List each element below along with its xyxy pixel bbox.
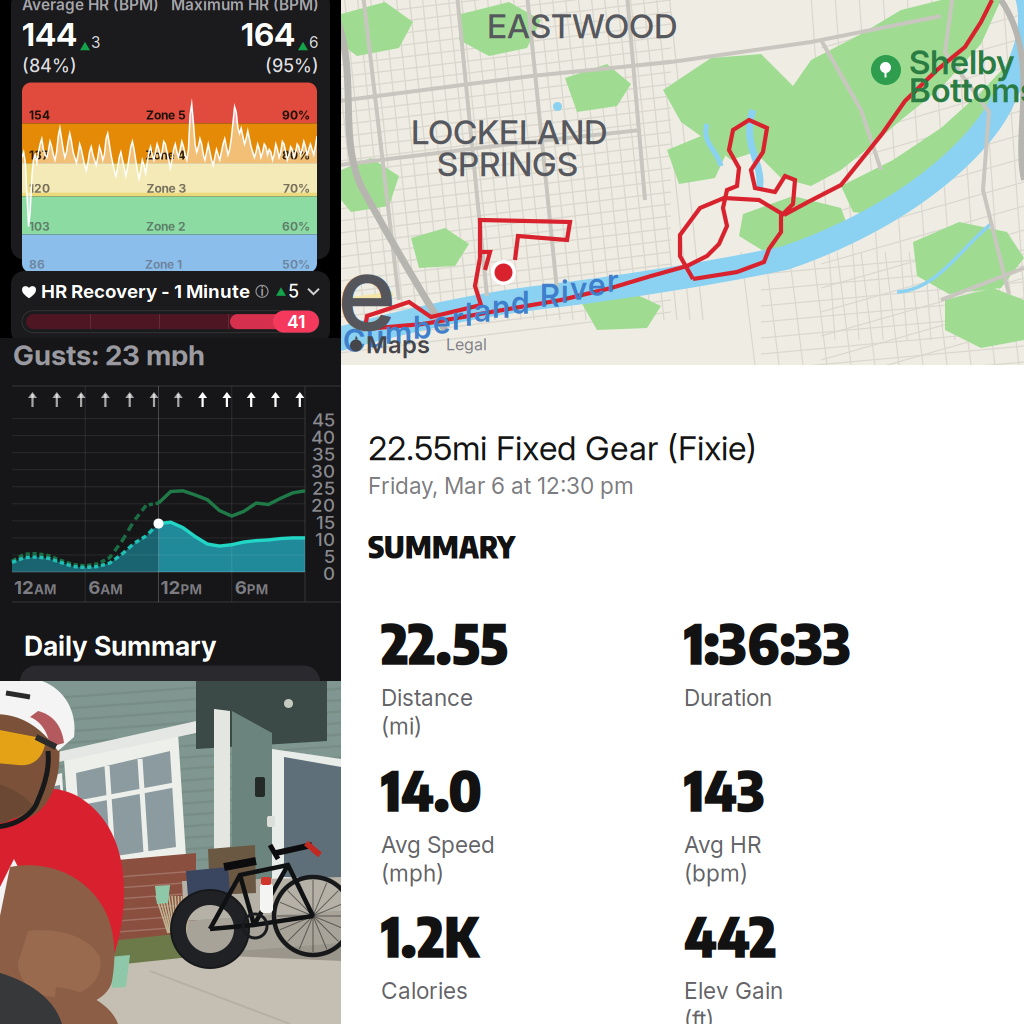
staticText: e bbox=[337, 232, 397, 355]
staticText: 70% bbox=[283, 181, 310, 195]
staticText: 50% bbox=[282, 257, 310, 271]
staticText: SPRINGS bbox=[437, 144, 578, 184]
staticText: 0 bbox=[323, 562, 335, 585]
staticText: 143 bbox=[684, 754, 765, 824]
staticText: e bbox=[433, 304, 451, 341]
staticText: 144 bbox=[22, 15, 77, 54]
staticText: n bbox=[492, 288, 510, 325]
staticText: 137 bbox=[29, 148, 49, 162]
staticText: Average HR (BPM) bbox=[22, 0, 159, 14]
staticText: 120 bbox=[29, 181, 50, 195]
staticText: 10 bbox=[315, 528, 335, 550]
staticText: Active bbox=[108, 337, 145, 351]
staticText: Shelby bbox=[909, 42, 1015, 82]
staticText: 80% bbox=[282, 148, 310, 162]
staticText: 154 bbox=[29, 108, 50, 122]
staticText: Duration bbox=[684, 684, 772, 711]
staticText: 40 bbox=[311, 426, 335, 448]
staticText: LOCKELAND bbox=[411, 112, 607, 152]
staticText: (84%) bbox=[22, 55, 77, 76]
staticText: Maps bbox=[366, 330, 430, 359]
staticText: u bbox=[366, 318, 384, 355]
staticText: r bbox=[607, 262, 619, 299]
staticText: C bbox=[343, 322, 365, 359]
staticText: Avg Speed bbox=[381, 831, 495, 858]
staticText: 1:36:33 bbox=[684, 607, 851, 677]
staticText: HR Recovery - 1 Minute bbox=[41, 280, 250, 303]
staticText: Gusts: 23 mph bbox=[13, 338, 205, 372]
staticText: 90% bbox=[282, 108, 310, 122]
staticText: Daily Summary bbox=[24, 630, 217, 662]
staticText: PM bbox=[247, 581, 268, 598]
staticText: 103 bbox=[29, 219, 50, 233]
staticText: Zone 1 bbox=[145, 257, 182, 271]
staticText: Avg HR bbox=[684, 831, 762, 858]
staticText: Zone 3 bbox=[146, 181, 186, 195]
staticText: i bbox=[260, 284, 263, 299]
button[interactable]: HR Recovery - 1 Minute bbox=[11, 276, 330, 349]
staticText: SUMMARY bbox=[368, 527, 515, 565]
staticText: b bbox=[413, 309, 432, 346]
staticText: 41 bbox=[287, 311, 305, 332]
staticText: m bbox=[385, 314, 412, 351]
button[interactable]: Route map bbox=[341, 0, 1024, 365]
staticText: 45 bbox=[312, 408, 335, 431]
staticText: 22.55 bbox=[381, 607, 508, 677]
staticText: 15 bbox=[160, 335, 177, 354]
staticText: 15 bbox=[316, 511, 335, 533]
staticText: Calories bbox=[381, 977, 468, 1004]
staticText: 25 bbox=[312, 477, 335, 499]
staticText: 35 bbox=[312, 443, 335, 465]
staticText: Elev Gain bbox=[684, 977, 783, 1004]
staticText: Distance bbox=[381, 684, 473, 711]
staticText: l bbox=[465, 296, 473, 333]
staticText: Zone 5 bbox=[146, 108, 186, 122]
staticText: 12 bbox=[160, 576, 180, 599]
staticText: r bbox=[452, 300, 464, 337]
staticText: 5 bbox=[324, 545, 335, 567]
staticText: 60% bbox=[282, 219, 310, 233]
staticText: Legal bbox=[446, 335, 487, 354]
staticText: (95%) bbox=[265, 55, 319, 76]
staticText: 6 bbox=[309, 33, 319, 52]
staticText: 14.0 bbox=[381, 754, 482, 824]
staticText: AM bbox=[100, 581, 122, 598]
staticText: 1.2K bbox=[381, 900, 479, 970]
staticText: Zone 4 bbox=[145, 148, 185, 162]
staticText: 30 bbox=[311, 460, 335, 482]
staticText: 6 bbox=[88, 576, 100, 599]
staticText: (mi) bbox=[381, 712, 422, 740]
staticText: Zone 2 bbox=[146, 219, 186, 233]
staticText: v bbox=[570, 270, 587, 307]
staticText: 5 bbox=[288, 280, 299, 302]
staticText: 86 bbox=[29, 257, 45, 271]
staticText: 442 bbox=[684, 900, 776, 970]
staticText: 22.55mi Fixed Gear (Fixie) bbox=[368, 428, 757, 468]
staticText: Maximum HR (BPM) bbox=[171, 0, 319, 14]
staticText: e bbox=[588, 266, 606, 303]
staticText: Poor bbox=[29, 337, 56, 351]
staticText: i bbox=[561, 273, 569, 310]
staticText: (bpm) bbox=[684, 859, 748, 887]
staticText: d bbox=[511, 284, 530, 321]
staticText: a bbox=[474, 292, 491, 329]
staticText: PM bbox=[180, 581, 201, 598]
staticText: 6 bbox=[235, 576, 247, 599]
staticText: 20 bbox=[311, 494, 335, 516]
staticText: 164 bbox=[241, 15, 295, 54]
staticText: Bottoms bbox=[909, 70, 1024, 110]
staticText: Friday, Mar 6 at 12:30 pm bbox=[368, 472, 634, 499]
staticText: EASTWOOD bbox=[487, 6, 677, 46]
staticText: 12 bbox=[14, 576, 34, 599]
staticText: 10 bbox=[76, 335, 94, 354]
staticText: 3 bbox=[91, 33, 100, 52]
staticText: AM bbox=[34, 581, 56, 598]
staticText: R bbox=[540, 277, 560, 314]
staticText: (mph) bbox=[381, 859, 444, 887]
staticText: Wind is currently 14 mph from the bbox=[34, 680, 303, 734]
staticText: (ft) bbox=[684, 1005, 714, 1024]
